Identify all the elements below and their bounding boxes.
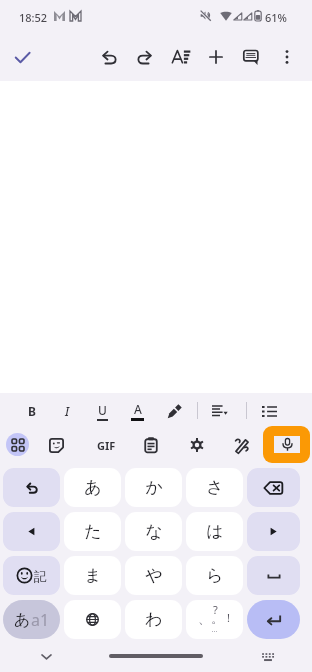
button[interactable]: Handwriting <box>229 432 255 458</box>
staticText: あ <box>84 477 102 498</box>
button[interactable]: は <box>186 512 243 551</box>
button[interactable]: か <box>125 468 182 507</box>
staticText: さ <box>206 477 224 498</box>
button[interactable]: Emoji and symbols <box>3 556 60 595</box>
button[interactable]: Enter <box>247 600 300 639</box>
staticText: a1 <box>31 609 50 631</box>
staticText: I <box>65 403 70 419</box>
button[interactable]: Punctuation <box>186 600 243 639</box>
button[interactable]: Backspace <box>247 468 300 507</box>
button[interactable]: Stickers <box>43 432 69 458</box>
staticText: は <box>206 521 224 542</box>
button[interactable]: Undo <box>3 468 60 507</box>
button[interactable]: な <box>125 512 182 551</box>
button[interactable]: ま <box>64 556 121 595</box>
button[interactable]: Settings <box>184 432 210 458</box>
button[interactable]: Hide keyboard <box>34 644 58 668</box>
staticText: や <box>145 565 163 586</box>
button[interactable]: Italic <box>54 398 80 424</box>
staticText: GIF <box>97 438 116 453</box>
staticText: ら <box>206 565 224 586</box>
button[interactable]: た <box>64 512 121 551</box>
staticText: ! <box>227 610 230 625</box>
staticText: た <box>84 521 102 542</box>
button[interactable]: さ <box>186 468 243 507</box>
button[interactable]: Comment <box>233 39 269 75</box>
button[interactable]: Text color <box>124 398 150 424</box>
button[interactable]: GIF <box>93 432 119 458</box>
button[interactable]: Text formatting <box>163 39 199 75</box>
button[interactable]: Switch keyboard <box>256 644 280 668</box>
button[interactable]: Redo <box>127 39 163 75</box>
button[interactable]: や <box>125 556 182 595</box>
staticText: 、。 <box>198 610 224 626</box>
button[interactable]: Undo <box>91 39 127 75</box>
staticText: 18:52 <box>19 10 48 25</box>
staticText: ま <box>84 565 102 586</box>
staticText: 61% <box>265 10 287 25</box>
staticText: わ <box>145 609 163 630</box>
button[interactable]: Clipboard <box>138 432 164 458</box>
button[interactable]: Highlight <box>161 398 187 424</box>
staticText: か <box>145 477 163 498</box>
staticText: U <box>98 402 107 418</box>
button[interactable]: ら <box>186 556 243 595</box>
button[interactable]: More options <box>269 39 305 75</box>
button[interactable]: Switch input mode <box>3 600 60 639</box>
staticText: B <box>28 403 36 419</box>
button[interactable]: Alignment <box>207 398 233 424</box>
button[interactable]: Keyboard apps <box>6 433 29 456</box>
staticText: な <box>145 521 163 542</box>
staticText: 記 <box>34 568 47 584</box>
button[interactable]: Move cursor right <box>247 512 300 551</box>
button[interactable]: Move cursor left <box>3 512 60 551</box>
staticText: ? <box>213 602 218 617</box>
button[interactable]: Space <box>247 556 300 595</box>
button[interactable]: Done <box>4 39 40 75</box>
button[interactable]: Voice input <box>263 426 310 463</box>
button[interactable]: List <box>256 398 282 424</box>
staticText: A <box>134 401 142 417</box>
button[interactable]: Change keyboard <box>64 600 121 639</box>
button[interactable]: Add <box>198 39 234 75</box>
button[interactable]: Bold <box>19 398 45 424</box>
staticText: あ <box>14 610 31 630</box>
button[interactable]: わ <box>125 600 182 639</box>
button[interactable]: Underline <box>89 398 115 424</box>
button[interactable]: あ <box>64 468 121 507</box>
